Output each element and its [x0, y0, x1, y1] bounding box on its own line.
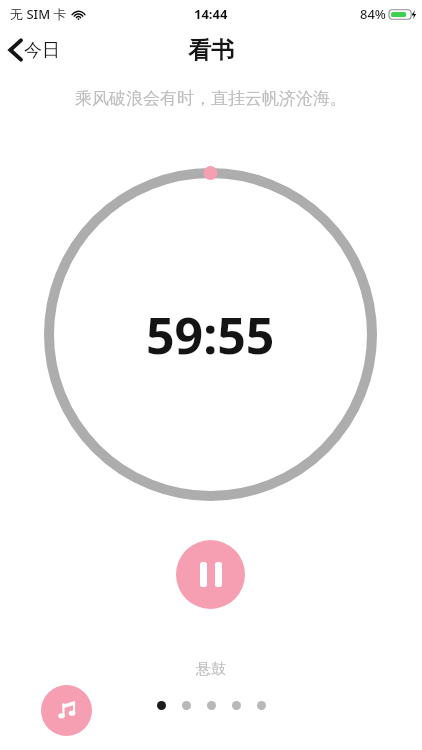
button[interactable]: Pause [176, 540, 245, 609]
staticText: 84% [360, 5, 386, 23]
staticText: 14:44 [194, 5, 228, 23]
staticText: 乘风破浪会有时，直挂云帆济沧海。 [46, 88, 376, 109]
staticText: 看书 [188, 36, 234, 65]
button[interactable]: 今日 [0, 34, 70, 66]
staticText: 59:55 [146, 301, 275, 369]
staticText: 无 SIM 卡 [10, 5, 67, 23]
staticText: 今日 [24, 39, 60, 62]
staticText: 悬鼓 [196, 660, 226, 679]
button[interactable]: Music [41, 685, 92, 736]
